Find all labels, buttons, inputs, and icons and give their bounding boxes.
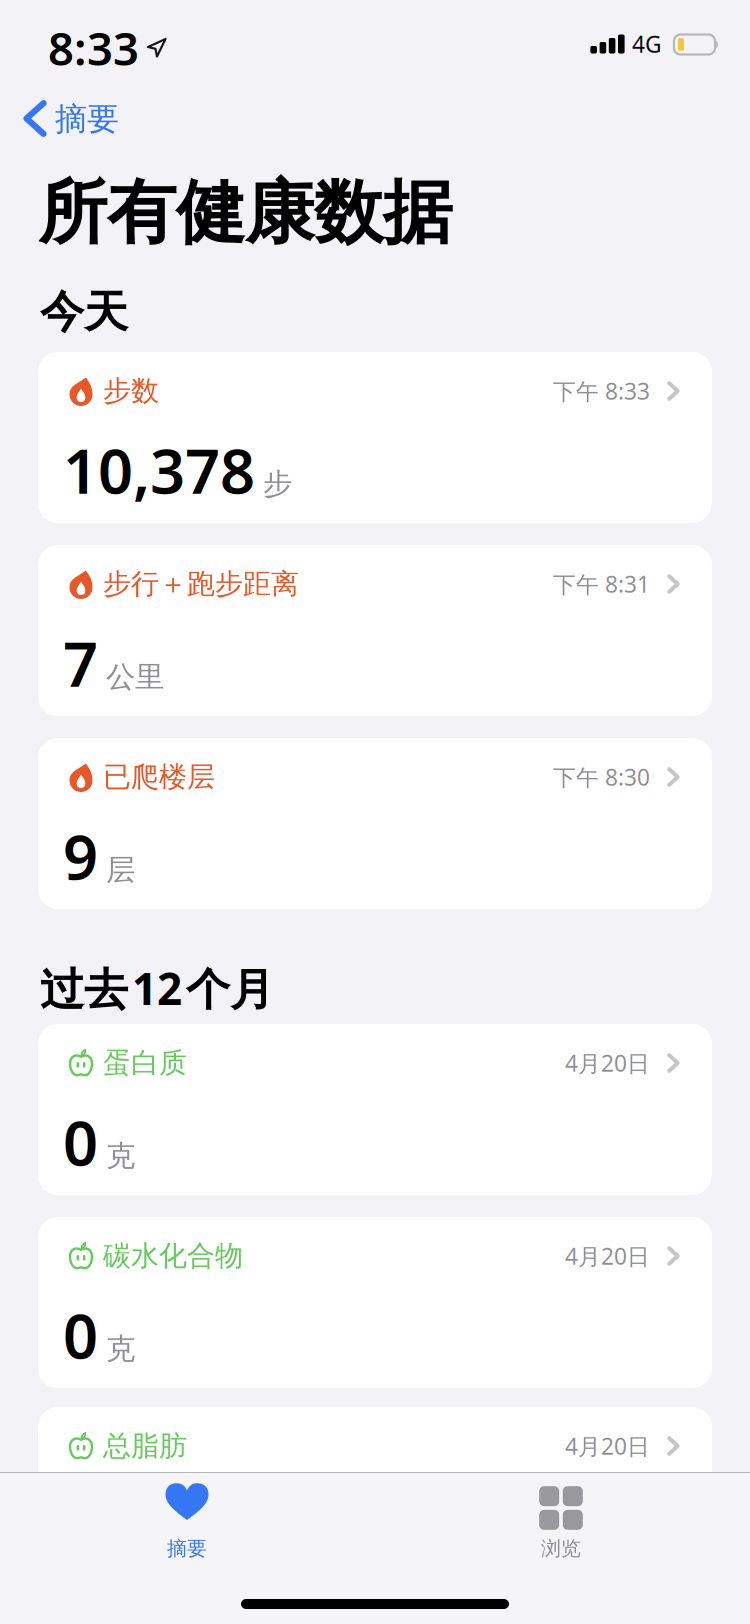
button[interactable]: 蛋白质: [38, 1024, 712, 1195]
staticText: 浏览: [541, 1536, 581, 1561]
staticText: 层: [106, 852, 135, 888]
staticText: 下午 8:31: [553, 569, 650, 599]
staticText: 摘要: [167, 1536, 207, 1561]
staticText: 步数: [103, 374, 159, 408]
button[interactable]: 步数: [38, 352, 712, 523]
staticText: 克: [106, 1138, 135, 1174]
staticText: 碳水化合物: [103, 1239, 243, 1273]
staticText: 蛋白质: [103, 1046, 187, 1080]
button[interactable]: 已爬楼层: [38, 738, 712, 909]
staticText: 4月20日: [565, 1431, 650, 1461]
staticText: 所有健康数据: [38, 170, 452, 256]
staticText: 0: [63, 1294, 98, 1376]
button[interactable]: 总脂肪: [38, 1407, 712, 1578]
staticText: 今天: [40, 285, 128, 339]
staticText: 10,378: [63, 429, 255, 511]
staticText: 步: [263, 466, 292, 502]
staticText: 8:33: [48, 18, 139, 78]
staticText: 下午 8:30: [553, 762, 650, 792]
staticText: 公里: [106, 659, 164, 695]
staticText: 0: [63, 1101, 98, 1183]
staticText: 过去 12 个月: [40, 959, 274, 1017]
staticText: 克: [106, 1331, 135, 1367]
staticText: 7: [63, 622, 98, 704]
staticText: 9: [63, 815, 98, 897]
staticText: 步行＋跑步距离: [103, 567, 299, 601]
button[interactable]: 浏览: [421, 1472, 701, 1568]
staticText: 4G: [632, 29, 662, 59]
staticText: 4月20日: [565, 1048, 650, 1078]
button[interactable]: 碳水化合物: [38, 1217, 712, 1388]
staticText: 下午 8:33: [553, 376, 650, 406]
button[interactable]: 摘要: [47, 1472, 327, 1568]
button[interactable]: 步行＋跑步距离: [38, 545, 712, 716]
button[interactable]: 摘要: [0, 99, 119, 139]
staticText: 4月20日: [565, 1241, 650, 1271]
staticText: 总脂肪: [103, 1429, 187, 1463]
staticText: 已爬楼层: [103, 760, 215, 794]
staticText: 摘要: [55, 99, 119, 139]
